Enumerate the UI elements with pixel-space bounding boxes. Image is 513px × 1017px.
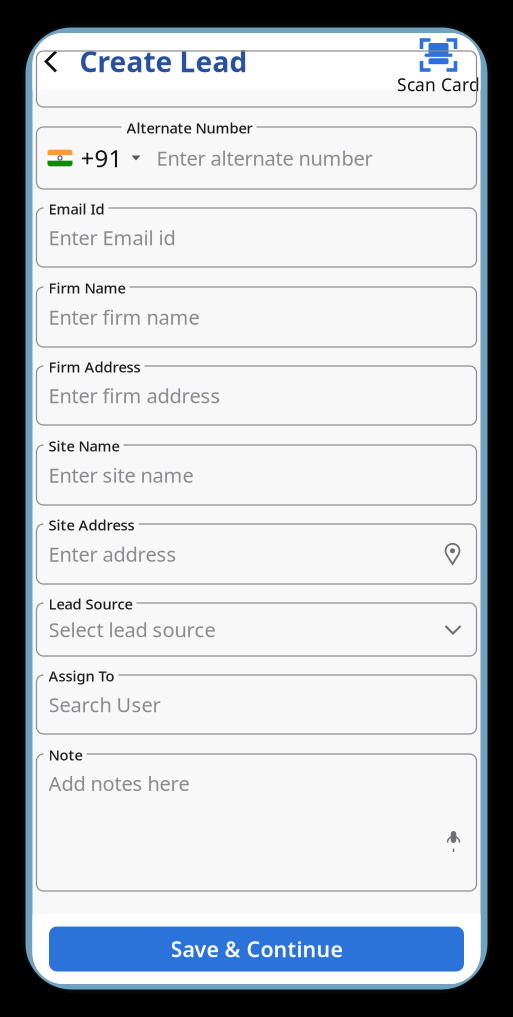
staticText: Enter address: [48, 541, 176, 567]
staticText: +91: [80, 142, 122, 174]
staticText: Site Address: [48, 515, 134, 534]
staticText: Enter Email id: [48, 224, 175, 251]
staticText: Select lead source: [48, 616, 215, 643]
staticText: Site Name: [48, 436, 119, 455]
staticText: Scan Card: [397, 73, 480, 96]
staticText: Save & Continue: [170, 935, 342, 963]
staticText: Add notes here: [48, 770, 189, 797]
button[interactable]: Back: [32, 33, 68, 90]
staticText: Enter site name: [48, 462, 193, 488]
staticText: Email Id: [48, 199, 104, 218]
button[interactable]: Scan Card: [402, 38, 480, 96]
button[interactable]: Save & Continue: [49, 926, 464, 971]
staticText: Note: [48, 745, 82, 764]
staticText: Enter firm address: [48, 382, 220, 409]
staticText: Firm Name: [48, 278, 125, 297]
staticText: Assign To: [48, 666, 114, 685]
staticText: Lead Source: [48, 594, 132, 613]
staticText: Enter alternate number: [156, 145, 372, 171]
staticText: Create Lead: [79, 43, 247, 80]
staticText: Search User: [48, 691, 160, 718]
staticText: Alternate Number: [126, 118, 252, 137]
staticText: Enter firm name: [48, 304, 199, 330]
staticText: Firm Address: [48, 357, 140, 376]
